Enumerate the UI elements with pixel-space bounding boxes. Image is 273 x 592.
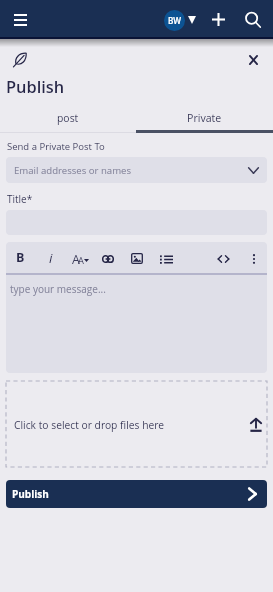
button[interactable]: B <box>12 248 28 267</box>
button[interactable]: Publish <box>6 480 267 508</box>
staticText: Email addresses or names <box>14 164 132 177</box>
button[interactable]: i <box>43 248 59 267</box>
button[interactable]: Menu <box>9 8 32 31</box>
button[interactable]: Add <box>207 8 229 30</box>
button[interactable]: Close <box>241 48 265 72</box>
staticText: Title* <box>7 192 33 206</box>
button[interactable]: Email addresses or names <box>6 157 267 183</box>
staticText: B <box>16 249 25 266</box>
staticText: i <box>49 249 53 267</box>
staticText: type your message... <box>10 282 106 296</box>
button[interactable]: Font size <box>69 248 93 267</box>
button[interactable]: List <box>157 252 176 267</box>
staticText: Click to select or drop files here <box>14 418 165 432</box>
button[interactable]: Code <box>215 252 232 266</box>
staticText: A <box>78 254 84 267</box>
button[interactable]: Image <box>128 250 146 267</box>
staticText: Send a Private Post To <box>7 140 105 153</box>
button[interactable]: Link <box>99 252 117 266</box>
staticText: Private <box>187 111 222 125</box>
button[interactable]: Search <box>242 9 263 30</box>
button[interactable]: Private <box>136 105 273 130</box>
staticText: A <box>72 251 80 268</box>
staticText: post <box>57 111 79 125</box>
button[interactable]: More options <box>249 251 259 267</box>
staticText: Publish <box>6 75 65 97</box>
button[interactable]: post <box>0 105 136 130</box>
button[interactable]: Account <box>164 10 196 31</box>
staticText: Publish <box>12 487 49 501</box>
button[interactable]: Upload <box>246 415 266 435</box>
staticText: BW <box>168 15 182 26</box>
